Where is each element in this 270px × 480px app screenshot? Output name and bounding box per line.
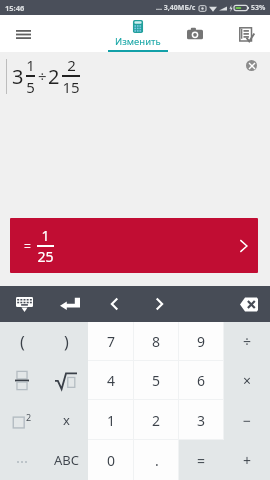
staticText: 3 xyxy=(197,411,206,430)
staticText: … 3,40MБ/c xyxy=(156,3,196,13)
button[interactable]: = xyxy=(10,218,258,273)
button[interactable]: × xyxy=(224,361,270,400)
staticText: + xyxy=(243,451,252,470)
staticText: 15 xyxy=(62,77,80,97)
button[interactable]: 2 xyxy=(134,400,179,440)
button[interactable]: History xyxy=(231,19,261,49)
staticText: ... xyxy=(16,447,29,467)
button[interactable]: ... xyxy=(0,440,44,480)
button[interactable] xyxy=(44,361,88,400)
button[interactable]: Menu xyxy=(8,19,38,49)
button[interactable]: Изменить xyxy=(108,15,168,52)
staticText: 5 xyxy=(152,371,161,390)
button[interactable]: 5 xyxy=(134,361,179,400)
staticText: 2 xyxy=(67,55,76,75)
staticText: x xyxy=(63,411,70,429)
button[interactable]: = xyxy=(179,440,224,480)
button[interactable]: 8 xyxy=(134,322,179,361)
button[interactable]: Enter xyxy=(48,286,92,322)
button[interactable]: x xyxy=(44,400,88,440)
staticText: 1 xyxy=(107,411,116,430)
staticText: 3 xyxy=(12,63,24,90)
staticText: 2 xyxy=(152,411,161,430)
staticText: 53% xyxy=(251,3,266,13)
button[interactable]: 4 xyxy=(88,361,134,400)
staticText: − xyxy=(243,411,252,430)
button[interactable]: Hide keyboard xyxy=(0,286,48,322)
staticText: 25 xyxy=(37,247,54,266)
staticText: . xyxy=(155,451,159,470)
button[interactable]: . xyxy=(134,440,179,480)
button[interactable]: 7 xyxy=(88,322,134,361)
button[interactable]: 9 xyxy=(179,322,224,361)
staticText: ( xyxy=(20,331,25,353)
staticText: 15:46 xyxy=(5,3,25,13)
staticText: 0 xyxy=(107,451,116,470)
staticText: 7 xyxy=(107,332,116,351)
button[interactable]: 6 xyxy=(179,361,224,400)
button[interactable]: 3 xyxy=(179,400,224,440)
staticText: ÷ xyxy=(243,332,252,351)
staticText: 8 xyxy=(152,332,161,351)
staticText: 6 xyxy=(197,371,206,390)
staticText: ÷ xyxy=(38,66,47,86)
staticText: ) xyxy=(64,331,69,353)
staticText: ABC xyxy=(54,451,79,469)
staticText: 5 xyxy=(26,77,35,97)
button[interactable]: Clear xyxy=(246,60,257,71)
staticText: 9 xyxy=(197,332,206,351)
button[interactable]: Next xyxy=(137,286,182,322)
button[interactable]: 1 xyxy=(88,400,134,440)
button[interactable] xyxy=(0,361,44,400)
staticText: 1 xyxy=(41,226,50,245)
staticText: 2 xyxy=(26,411,32,423)
button[interactable]: Camera xyxy=(180,19,210,49)
button[interactable]: Backspace xyxy=(228,286,270,322)
staticText: = xyxy=(24,238,31,254)
staticText: 1 xyxy=(26,55,35,75)
staticText: Изменить xyxy=(115,35,161,48)
button[interactable]: ( xyxy=(0,322,44,361)
button[interactable]: ABC xyxy=(44,440,88,480)
button[interactable]: ) xyxy=(44,322,88,361)
staticText: = xyxy=(197,451,206,470)
button[interactable]: Previous xyxy=(92,286,137,322)
button[interactable]: ÷ xyxy=(224,322,270,361)
staticText: × xyxy=(243,371,252,390)
button[interactable]: − xyxy=(224,400,270,440)
button[interactable]: 0 xyxy=(88,440,134,480)
staticText: 4 xyxy=(107,371,116,390)
staticText: 2 xyxy=(48,63,60,90)
button[interactable]: + xyxy=(224,440,270,480)
button[interactable]: 2 xyxy=(0,400,44,440)
